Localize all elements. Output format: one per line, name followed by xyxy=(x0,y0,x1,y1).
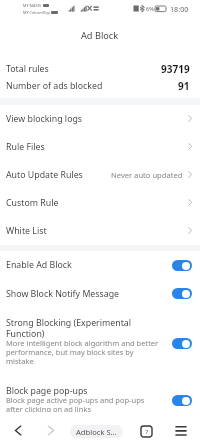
staticText: 7 xyxy=(145,428,149,436)
staticText: Rule Files xyxy=(6,141,45,153)
staticText: Block page active pop-ups and pop-ups af… xyxy=(6,395,160,415)
staticText: White List xyxy=(6,225,47,237)
button[interactable]: Toggle xyxy=(172,338,192,349)
staticText: Enable Ad Block xyxy=(6,259,72,271)
button[interactable]: Total rules xyxy=(0,60,200,77)
staticText: Custom Rule xyxy=(6,197,59,209)
staticText: Number of ads blocked xyxy=(6,80,103,92)
staticText: 91 xyxy=(178,79,190,93)
button[interactable]: Strong Blocking (Experimental Function) xyxy=(0,308,200,378)
button[interactable]: Block page pop-ups xyxy=(0,378,200,423)
staticText: Ad Block xyxy=(81,29,119,42)
button[interactable]: Number of ads blocked xyxy=(0,77,200,94)
button[interactable]: Custom Rule xyxy=(0,189,200,217)
button[interactable]: Rule Files xyxy=(0,133,200,161)
staticText: 93719 xyxy=(161,62,190,76)
staticText: MY CelcomDigi xyxy=(23,10,50,15)
button[interactable]: Auto Update Rules xyxy=(0,161,200,189)
staticText: Adblock S... xyxy=(76,427,117,437)
staticText: View blocking logs xyxy=(6,113,83,125)
button[interactable]: Enable Ad Block xyxy=(0,251,200,279)
button[interactable]: White List xyxy=(0,217,200,245)
staticText: Block page pop-ups xyxy=(6,385,88,397)
button[interactable]: Toggle xyxy=(172,260,192,271)
button[interactable]: Back xyxy=(9,421,27,439)
staticText: Auto Update Rules xyxy=(6,169,83,181)
staticText: Total rules xyxy=(6,63,49,75)
staticText: Show Block Notify Message xyxy=(6,288,120,300)
button[interactable]: Toggle xyxy=(172,395,192,406)
staticText: Strong Blocking (Experimental Function) xyxy=(6,317,160,340)
staticText: 18:00 xyxy=(170,4,189,14)
button[interactable]: Show Block Notify Message xyxy=(0,279,200,308)
button[interactable]: Menu xyxy=(171,421,190,440)
staticText: More intelligent block algorithm and bet… xyxy=(6,338,160,367)
button[interactable]: Toggle xyxy=(172,288,192,299)
staticText: MY MAXIS xyxy=(23,3,42,8)
button[interactable]: Forward xyxy=(42,421,60,439)
staticText: Never auto updated xyxy=(111,170,183,180)
button[interactable]: Tabs xyxy=(136,421,157,442)
button[interactable]: Adblock S... xyxy=(70,425,123,438)
staticText: 6% xyxy=(146,5,154,13)
button[interactable]: View blocking logs xyxy=(0,105,200,133)
